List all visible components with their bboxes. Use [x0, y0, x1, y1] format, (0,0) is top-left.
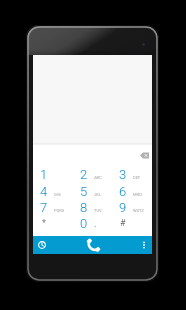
button[interactable]: 2 [73, 165, 113, 183]
button[interactable]: 1 [33, 165, 73, 183]
staticText: TUV [94, 208, 102, 213]
button[interactable]: Backspace [137, 148, 151, 162]
staticText: 9 [119, 200, 127, 215]
staticText: 8 [80, 200, 88, 215]
button[interactable]: # [112, 214, 152, 232]
button[interactable]: 5 [73, 182, 113, 200]
button[interactable]: 3 [112, 165, 152, 183]
staticText: WXYZ [133, 208, 144, 213]
staticText: DEF [133, 175, 141, 180]
staticText: 6 [119, 184, 127, 199]
button[interactable]: 9 [112, 198, 152, 216]
staticText: PQRS [54, 208, 65, 213]
staticText: MNO [133, 192, 143, 197]
staticText: GHI [54, 192, 61, 197]
staticText: JKL [94, 192, 101, 197]
staticText: 7 [40, 200, 48, 215]
staticText: 0 [80, 216, 88, 231]
staticText: 5 [80, 184, 88, 199]
button[interactable]: Call history [33, 236, 51, 254]
staticText: 4 [40, 184, 48, 199]
button[interactable]: Call [83, 236, 103, 254]
staticText: * [42, 218, 46, 229]
button[interactable]: More options [135, 236, 152, 254]
button[interactable]: 4 [33, 182, 73, 200]
staticText: + [94, 224, 97, 229]
staticText: 3 [119, 167, 127, 182]
button[interactable]: 6 [112, 182, 152, 200]
button[interactable]: 8 [73, 198, 113, 216]
button[interactable]: * [33, 214, 73, 232]
staticText: # [120, 218, 126, 229]
button[interactable]: 0 [73, 214, 113, 232]
button[interactable]: 7 [33, 198, 73, 216]
staticText: 2 [80, 167, 88, 182]
staticText: ABC [94, 175, 102, 180]
staticText: 1 [40, 167, 48, 182]
